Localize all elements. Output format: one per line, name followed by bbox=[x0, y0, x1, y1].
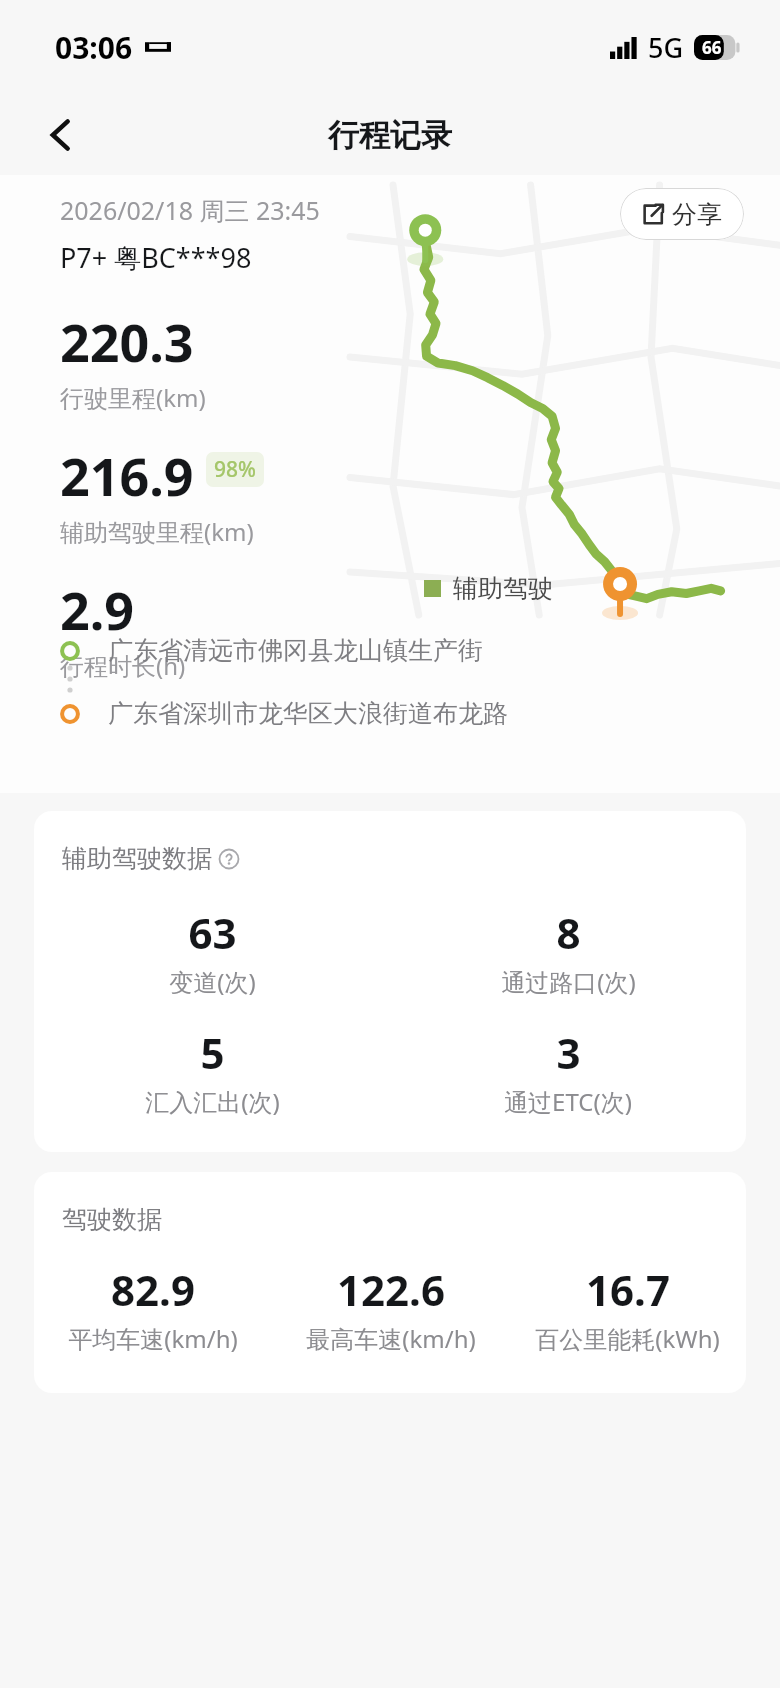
staticText: 16.7 bbox=[586, 1261, 670, 1318]
staticText: 5 bbox=[200, 1024, 225, 1081]
staticText: 2026/02/18 周三 23:45 bbox=[60, 193, 320, 227]
staticText: 辅助驾驶数据 bbox=[62, 843, 212, 874]
staticText: 最高车速(km/h) bbox=[306, 1322, 476, 1355]
button[interactable]: 辅助驾驶数据 bbox=[34, 811, 746, 1152]
button[interactable]: 驾驶数据 bbox=[34, 1172, 746, 1393]
staticText: 行程时长(h) bbox=[60, 649, 186, 682]
staticText: 广东省深圳市龙华区大浪街道布龙路 bbox=[108, 698, 508, 729]
staticText: 通过ETC(次) bbox=[504, 1085, 632, 1118]
staticText: 98% bbox=[214, 455, 256, 484]
staticText: 3 bbox=[556, 1024, 581, 1081]
staticText: 平均车速(km/h) bbox=[68, 1322, 238, 1355]
staticText: 广东省清远市佛冈县龙山镇生产街 bbox=[108, 635, 483, 666]
staticText: 66 bbox=[702, 36, 722, 59]
staticText: 5G bbox=[648, 29, 684, 66]
staticText: 驾驶数据 bbox=[62, 1204, 162, 1235]
staticText: 通过路口(次) bbox=[501, 965, 636, 998]
staticText: 220.3 bbox=[60, 306, 194, 377]
staticText: 行驶里程(km) bbox=[60, 381, 206, 414]
staticText: 2.9 bbox=[60, 574, 135, 645]
staticText: 216.9 bbox=[60, 440, 194, 511]
button[interactable]: 分享 bbox=[620, 188, 744, 240]
staticText: 分享 bbox=[672, 199, 722, 230]
staticText: 变道(次) bbox=[169, 965, 256, 998]
staticText: 辅助驾驶里程(km) bbox=[60, 515, 254, 548]
staticText: P7+ 粤BC***98 bbox=[60, 239, 252, 276]
staticText: 汇入汇出(次) bbox=[145, 1085, 280, 1118]
staticText: 122.6 bbox=[337, 1261, 445, 1318]
staticText: 行程记录 bbox=[328, 116, 452, 155]
staticText: 8 bbox=[556, 904, 581, 961]
staticText: 辅助驾驶 bbox=[453, 573, 553, 604]
staticText: 百公里能耗(kWh) bbox=[535, 1322, 720, 1355]
button[interactable]: Back bbox=[36, 111, 84, 159]
staticText: 63 bbox=[188, 904, 237, 961]
staticText: 82.9 bbox=[111, 1261, 195, 1318]
staticText: 03:06 bbox=[55, 27, 133, 68]
